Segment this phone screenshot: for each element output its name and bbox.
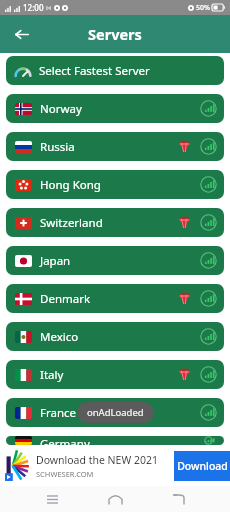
staticText: 12:00: [23, 2, 44, 13]
button[interactable]: Denmark: [6, 284, 224, 313]
button[interactable]: Download: [174, 451, 230, 481]
staticText: Download the NEW 2021 CF…: [36, 453, 170, 467]
button[interactable]: Back: [8, 21, 34, 47]
staticText: Norway: [40, 101, 82, 117]
staticText: Denmark: [40, 291, 91, 307]
button[interactable]: Germany: [6, 436, 224, 445]
staticText: Servers: [88, 24, 142, 44]
staticText: Japan: [40, 253, 71, 269]
staticText: Italy: [40, 367, 64, 383]
staticText: ⋈: [46, 4, 52, 11]
button[interactable]: Italy: [6, 360, 224, 389]
staticText: Russia: [40, 139, 75, 155]
staticText: Download: [177, 459, 228, 473]
button[interactable]: Select Fastest Server: [6, 56, 224, 85]
button[interactable]: Norway: [6, 94, 224, 123]
button[interactable]: Russia: [6, 132, 224, 161]
staticText: onAdLoaded: [87, 406, 144, 419]
button[interactable]: Switzerland: [6, 208, 224, 237]
button[interactable]: Home: [100, 486, 130, 512]
staticText: 50%: [196, 3, 210, 13]
button[interactable]: Japan: [6, 246, 224, 275]
button[interactable]: France: [6, 398, 224, 427]
button[interactable]: Back: [163, 486, 193, 512]
staticText: Germany: [40, 436, 90, 445]
staticText: Mexico: [40, 329, 79, 345]
staticText: Switzerland: [40, 215, 103, 231]
button[interactable]: Recent apps: [37, 486, 67, 512]
button[interactable]: Mexico: [6, 322, 224, 351]
staticText: France: [40, 405, 77, 421]
button[interactable]: Hong Kong: [6, 170, 224, 199]
staticText: Hong Kong: [40, 177, 101, 193]
staticText: Select Fastest Server: [39, 63, 150, 79]
staticText: SCHWESER.COM: [36, 469, 94, 479]
